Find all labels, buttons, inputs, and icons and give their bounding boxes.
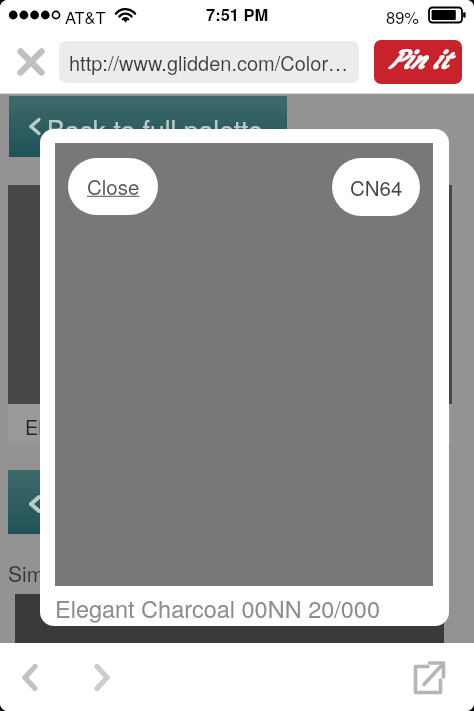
button[interactable]: Forward <box>81 656 123 698</box>
staticText: Similar colors <box>8 558 135 588</box>
button[interactable]: Pin it <box>374 40 462 84</box>
staticText: Elegant Charcoal 00NN 20/000 <box>55 591 381 625</box>
staticText: Back to full palette <box>47 110 263 148</box>
staticText: CN64 <box>350 172 403 201</box>
staticText: 7:51 PM <box>206 2 269 26</box>
button[interactable]: CN64 <box>332 158 420 216</box>
staticText: AT&T <box>65 5 106 29</box>
button[interactable]: http://www.glidden.com/Color… <box>59 41 359 83</box>
staticText: Close <box>87 171 140 200</box>
staticText: Elegant Charcoal 00NN 20/000 <box>25 412 302 441</box>
button[interactable]: Close browser <box>11 42 51 82</box>
staticText: http://www.glidden.com/Color… <box>69 48 349 77</box>
button[interactable]: Close <box>68 158 158 215</box>
staticText: Pin it <box>389 45 448 76</box>
button[interactable]: Share <box>405 656 449 700</box>
staticText: 89% <box>386 5 420 29</box>
button[interactable]: Back <box>9 656 51 698</box>
